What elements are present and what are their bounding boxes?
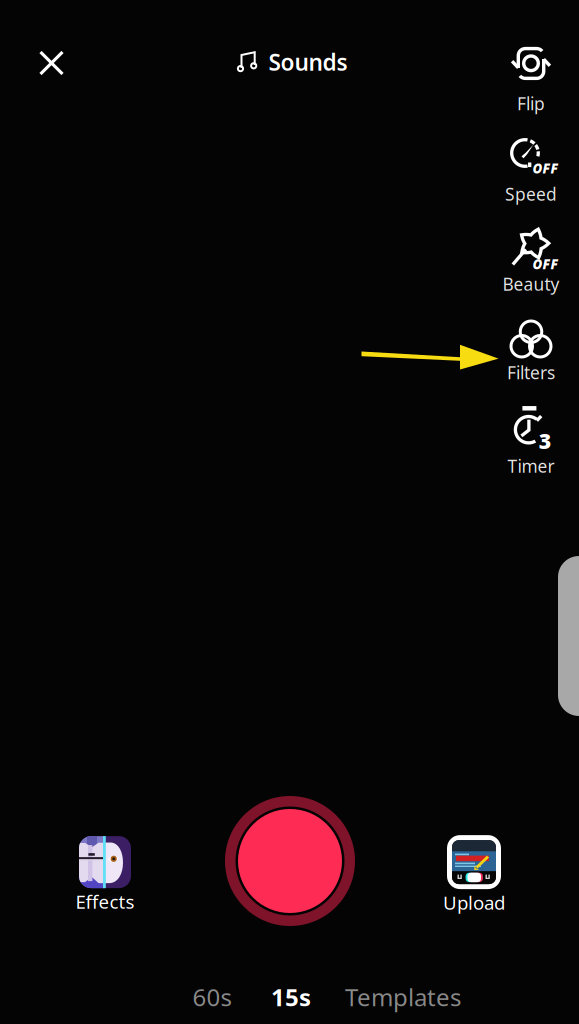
staticText: Flip (517, 92, 545, 115)
button[interactable]: OFF (491, 225, 571, 291)
staticText: 15s (271, 981, 311, 1013)
button[interactable]: Close (24, 36, 78, 90)
staticText: 3 (539, 426, 552, 455)
staticText: Templates (345, 981, 461, 1013)
button[interactable]: Record (222, 793, 358, 929)
button[interactable]: Sounds (230, 42, 353, 82)
button[interactable]: 3 (491, 406, 571, 472)
staticText: 60s (192, 981, 231, 1013)
button[interactable]: Filters (491, 316, 571, 382)
staticText: OFF (532, 159, 558, 177)
staticText: Upload (443, 890, 505, 915)
staticText: Sounds (268, 47, 347, 77)
staticText: Speed (505, 182, 557, 205)
staticText: Filters (507, 361, 555, 384)
staticText: Beauty (502, 272, 559, 295)
button[interactable]: 60s (172, 974, 252, 1020)
button[interactable]: OFF (491, 136, 571, 202)
button[interactable]: Templates (330, 974, 476, 1020)
button[interactable]: 15s (252, 974, 330, 1020)
staticText: Effects (75, 889, 134, 914)
button[interactable]: Effects (57, 836, 153, 914)
staticText: Timer (507, 454, 554, 477)
button[interactable]: Upload (426, 835, 522, 915)
staticText: OFF (532, 255, 558, 273)
button[interactable]: Flip (491, 47, 571, 113)
